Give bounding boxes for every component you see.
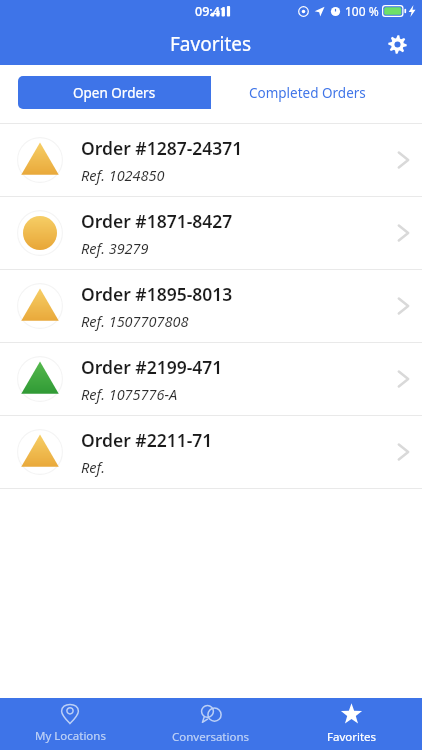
staticText: 100 % <box>345 3 379 19</box>
staticText: Order #2199-471 <box>81 355 223 379</box>
button[interactable]: Order #2211-71 <box>0 416 422 488</box>
staticText: Ref. <box>81 457 105 477</box>
staticText: Ref. 1024850 <box>81 165 165 185</box>
staticText: Conversations <box>172 729 250 745</box>
staticText: My Locations <box>35 728 106 744</box>
staticText: Order #1287-24371 <box>81 136 243 160</box>
staticText: Ref. 39279 <box>81 238 149 258</box>
button[interactable]: Order #1287-24371 <box>0 124 422 196</box>
button[interactable]: Order #1871-8427 <box>0 197 422 269</box>
staticText: Completed Orders <box>249 84 366 102</box>
staticText: Order #1895-8013 <box>81 282 233 306</box>
staticText: Favorites <box>170 31 252 57</box>
button[interactable]: Conversations <box>140 698 281 750</box>
staticText: Order #2211-71 <box>81 428 213 452</box>
button[interactable]: My Locations <box>0 698 140 750</box>
staticText: 09:41 <box>195 3 228 20</box>
button[interactable]: Settings <box>379 26 415 62</box>
staticText: Ref. 1507707808 <box>81 311 189 331</box>
button[interactable]: Order #2199-471 <box>0 343 422 415</box>
button[interactable]: Order #1895-8013 <box>0 270 422 342</box>
staticText: Order #1871-8427 <box>81 209 233 233</box>
button[interactable]: Favorites <box>281 698 422 750</box>
staticText: Open Orders <box>73 84 156 102</box>
button[interactable]: Completed Orders <box>211 76 404 109</box>
button[interactable]: Open Orders <box>18 76 211 109</box>
staticText: Ref. 1075776-A <box>81 384 178 404</box>
staticText: Favorites <box>327 729 377 745</box>
